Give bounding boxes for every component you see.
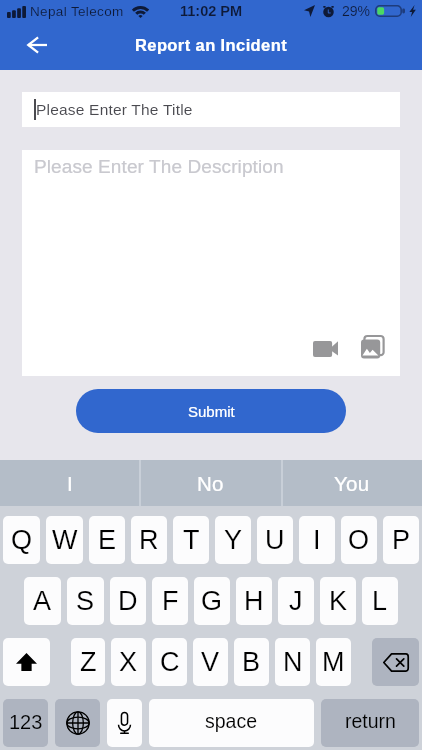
staticText: Please Enter The Title: [36, 101, 193, 118]
button[interactable]: Change keyboard: [55, 699, 100, 747]
button[interactable]: U: [257, 516, 293, 564]
staticText: U: [265, 525, 285, 555]
button[interactable]: A: [24, 577, 61, 625]
button[interactable]: D: [110, 577, 146, 625]
staticText: K: [329, 586, 348, 616]
button[interactable]: Y: [215, 516, 251, 564]
button[interactable]: V: [193, 638, 228, 686]
staticText: F: [162, 586, 179, 616]
button[interactable]: You: [281, 460, 422, 506]
button[interactable]: Dictate: [107, 699, 142, 747]
button[interactable]: return: [321, 699, 419, 747]
button[interactable]: J: [278, 577, 314, 625]
staticText: Y: [224, 525, 243, 555]
button[interactable]: X: [111, 638, 146, 686]
button[interactable]: B: [234, 638, 269, 686]
button[interactable]: 123: [3, 699, 48, 747]
button[interactable]: Backspace: [372, 638, 419, 686]
button[interactable]: Attach image: [354, 330, 390, 365]
staticText: B: [242, 647, 261, 677]
staticText: 11:02 PM: [180, 3, 243, 19]
button[interactable]: O: [341, 516, 377, 564]
staticText: R: [139, 525, 159, 555]
button[interactable]: H: [236, 577, 272, 625]
staticText: X: [119, 647, 138, 677]
staticText: return: [345, 710, 396, 732]
staticText: O: [348, 525, 370, 555]
button[interactable]: Z: [71, 638, 105, 686]
button[interactable]: Please Enter The Title: [22, 92, 400, 127]
button[interactable]: No: [140, 460, 281, 506]
button[interactable]: L: [362, 577, 398, 625]
staticText: 29%: [342, 3, 371, 19]
button[interactable]: Q: [3, 516, 40, 564]
button[interactable]: G: [194, 577, 230, 625]
button[interactable]: I: [0, 460, 140, 506]
staticText: Z: [80, 647, 97, 677]
button[interactable]: I: [299, 516, 335, 564]
staticText: No: [197, 472, 224, 495]
button[interactable]: R: [131, 516, 167, 564]
staticText: A: [33, 586, 52, 616]
button[interactable]: W: [46, 516, 83, 564]
button[interactable]: Attach video: [306, 333, 345, 364]
button[interactable]: C: [152, 638, 187, 686]
staticText: I: [313, 525, 321, 555]
button[interactable]: P: [383, 516, 419, 564]
staticText: J: [289, 586, 303, 616]
staticText: Q: [11, 525, 33, 555]
staticText: I: [67, 472, 73, 495]
button[interactable]: T: [173, 516, 209, 564]
button[interactable]: F: [152, 577, 188, 625]
staticText: P: [392, 525, 411, 555]
button[interactable]: space: [149, 699, 314, 747]
button[interactable]: Submit: [76, 389, 346, 433]
button[interactable]: Please Enter The Description: [22, 150, 400, 376]
staticText: Please Enter The Description: [34, 156, 284, 177]
staticText: D: [118, 586, 138, 616]
staticText: V: [201, 647, 220, 677]
staticText: N: [283, 647, 303, 677]
staticText: S: [76, 586, 95, 616]
button[interactable]: M: [316, 638, 351, 686]
staticText: E: [98, 525, 117, 555]
staticText: M: [322, 647, 345, 677]
button[interactable]: S: [67, 577, 104, 625]
button[interactable]: Back: [16, 24, 58, 66]
staticText: You: [334, 472, 370, 495]
button[interactable]: E: [89, 516, 125, 564]
button[interactable]: Shift: [3, 638, 50, 686]
staticText: L: [372, 586, 388, 616]
staticText: space: [205, 710, 258, 732]
staticText: Nepal Telecom: [30, 4, 124, 19]
staticText: H: [244, 586, 264, 616]
staticText: G: [201, 586, 223, 616]
button[interactable]: K: [320, 577, 356, 625]
staticText: Submit: [188, 403, 235, 420]
staticText: Report an Incident: [135, 36, 288, 54]
staticText: W: [52, 525, 78, 555]
staticText: T: [183, 525, 200, 555]
staticText: 123: [9, 711, 43, 733]
button[interactable]: N: [275, 638, 310, 686]
staticText: C: [160, 647, 180, 677]
